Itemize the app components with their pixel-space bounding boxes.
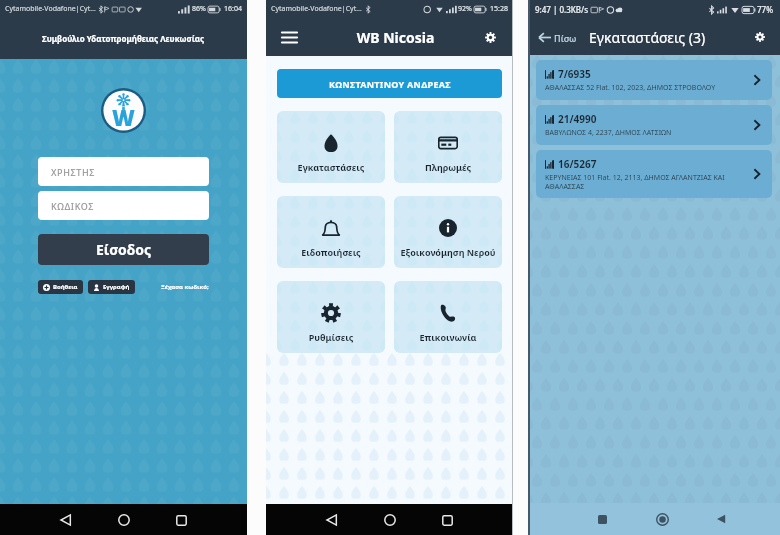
- staticText: ΒΑΒΥΛΩΝΟΣ 4, 2237, ΔΗΜΟΣ ΛΑΤΣΙΩΝ: [545, 128, 672, 138]
- staticText: 86%: [192, 4, 206, 14]
- button[interactable]: Recents: [436, 509, 458, 531]
- staticText: Είσοδος: [96, 240, 152, 259]
- staticText: Cytamobile-Vodafone|Cyt…: [5, 4, 96, 14]
- button[interactable]: Εξοικονόμηση Νερού: [394, 196, 502, 268]
- button[interactable]: Home: [113, 509, 135, 531]
- button[interactable]: 7/6935: [536, 60, 772, 100]
- staticText: 16:04: [224, 4, 242, 14]
- staticText: Βοήθεια: [53, 283, 78, 291]
- button[interactable]: Ειδοποιήσεις: [277, 196, 385, 268]
- button[interactable]: Home: [652, 509, 672, 529]
- staticText: Εγγραφή: [103, 283, 130, 291]
- button[interactable]: 21/4990: [536, 105, 772, 145]
- staticText: Εξοικονόμηση Νερού: [397, 246, 499, 258]
- button[interactable]: Επικοινωνία: [394, 281, 502, 353]
- staticText: WB Nicosia: [312, 28, 479, 47]
- staticText: 77%: [757, 4, 773, 15]
- button[interactable]: Menu: [278, 26, 300, 48]
- button[interactable]: Home: [379, 509, 401, 531]
- staticText: 16/5267: [558, 157, 597, 171]
- staticText: ΑΘΑΛΑΣΣΑΣ 52 Flat. 102, 2023, ΔΗΜΟΣ ΣΤΡΟ…: [545, 83, 716, 93]
- button[interactable]: ΚΩΔΙΚΟΣ: [38, 191, 209, 220]
- button[interactable]: Settings: [479, 26, 501, 48]
- staticText: ΚΩΔΙΚΟΣ: [51, 200, 95, 212]
- staticText: ΧΡΗΣΤΗΣ: [51, 166, 96, 178]
- staticText: 92%: [458, 4, 472, 14]
- button[interactable]: Back: [55, 509, 77, 531]
- staticText: Πληρωμές: [397, 161, 499, 173]
- button[interactable]: ΧΡΗΣΤΗΣ: [38, 157, 209, 186]
- staticText: Συμβούλιο Υδατοπρομήθειας Λευκωσίας: [42, 33, 205, 44]
- button[interactable]: Πληρωμές: [394, 111, 502, 183]
- staticText: Εγκαταστάσεις: [280, 161, 382, 173]
- staticText: W: [112, 102, 135, 132]
- button[interactable]: ΚΩΝΣΤΑΝΤΙΝΟΥ ΑΝΔΡΕΑΣ: [277, 69, 502, 98]
- button[interactable]: Πίσω: [538, 31, 577, 44]
- button[interactable]: 16/5267: [536, 150, 772, 198]
- staticText: Εγκαταστάσεις (3): [589, 28, 706, 47]
- staticText: Πίσω: [554, 32, 577, 44]
- button[interactable]: Back: [711, 509, 731, 529]
- button[interactable]: Ρυθμίσεις: [277, 281, 385, 353]
- staticText: 9:47 | 0.3KB/s: [535, 4, 589, 15]
- button[interactable]: Είσοδος: [38, 234, 209, 265]
- staticText: ΚΩΝΣΤΑΝΤΙΝΟΥ ΑΝΔΡΕΑΣ: [329, 78, 451, 90]
- staticText: ΚΕΡΥΝΕΙΑΣ 101 Flat. 12, 2113, ΔΗΜΟΣ ΑΓΛΑ…: [545, 173, 745, 191]
- button[interactable]: Recents: [170, 509, 192, 531]
- staticText: Επικοινωνία: [397, 331, 499, 343]
- staticText: 7/6935: [558, 67, 591, 81]
- button[interactable]: Back: [321, 509, 343, 531]
- staticText: 21/4990: [558, 112, 597, 126]
- button[interactable]: Βοήθεια: [43, 280, 78, 294]
- staticText: Ρυθμίσεις: [280, 331, 382, 343]
- button[interactable]: Εγκαταστάσεις: [277, 111, 385, 183]
- staticText: 15:28: [490, 4, 508, 14]
- staticText: Cytamobile-Vodafone|Cyt…: [271, 4, 362, 14]
- button[interactable]: Settings: [750, 27, 770, 47]
- button[interactable]: Ξέχασα κωδικό;: [161, 283, 209, 291]
- button[interactable]: Recents: [592, 509, 612, 529]
- button[interactable]: Εγγραφή: [93, 280, 130, 294]
- staticText: Ειδοποιήσεις: [280, 246, 382, 258]
